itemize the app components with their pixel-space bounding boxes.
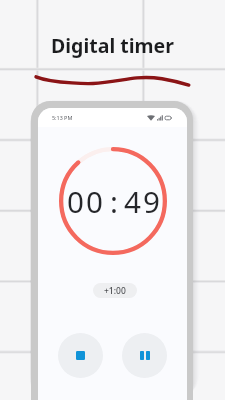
staticText: 0 [86, 181, 103, 221]
staticText: 4 [124, 181, 141, 221]
staticText: 9 [143, 181, 160, 221]
staticText: Digital timer [51, 32, 174, 59]
button[interactable]: Pause [122, 333, 167, 378]
staticText: : [110, 181, 118, 221]
button[interactable]: Stop [58, 333, 103, 378]
button[interactable]: +1:00 [93, 283, 137, 298]
staticText: 5:13 PM [52, 114, 73, 121]
staticText: 0 [67, 181, 84, 221]
staticText: +1:00 [104, 285, 126, 297]
